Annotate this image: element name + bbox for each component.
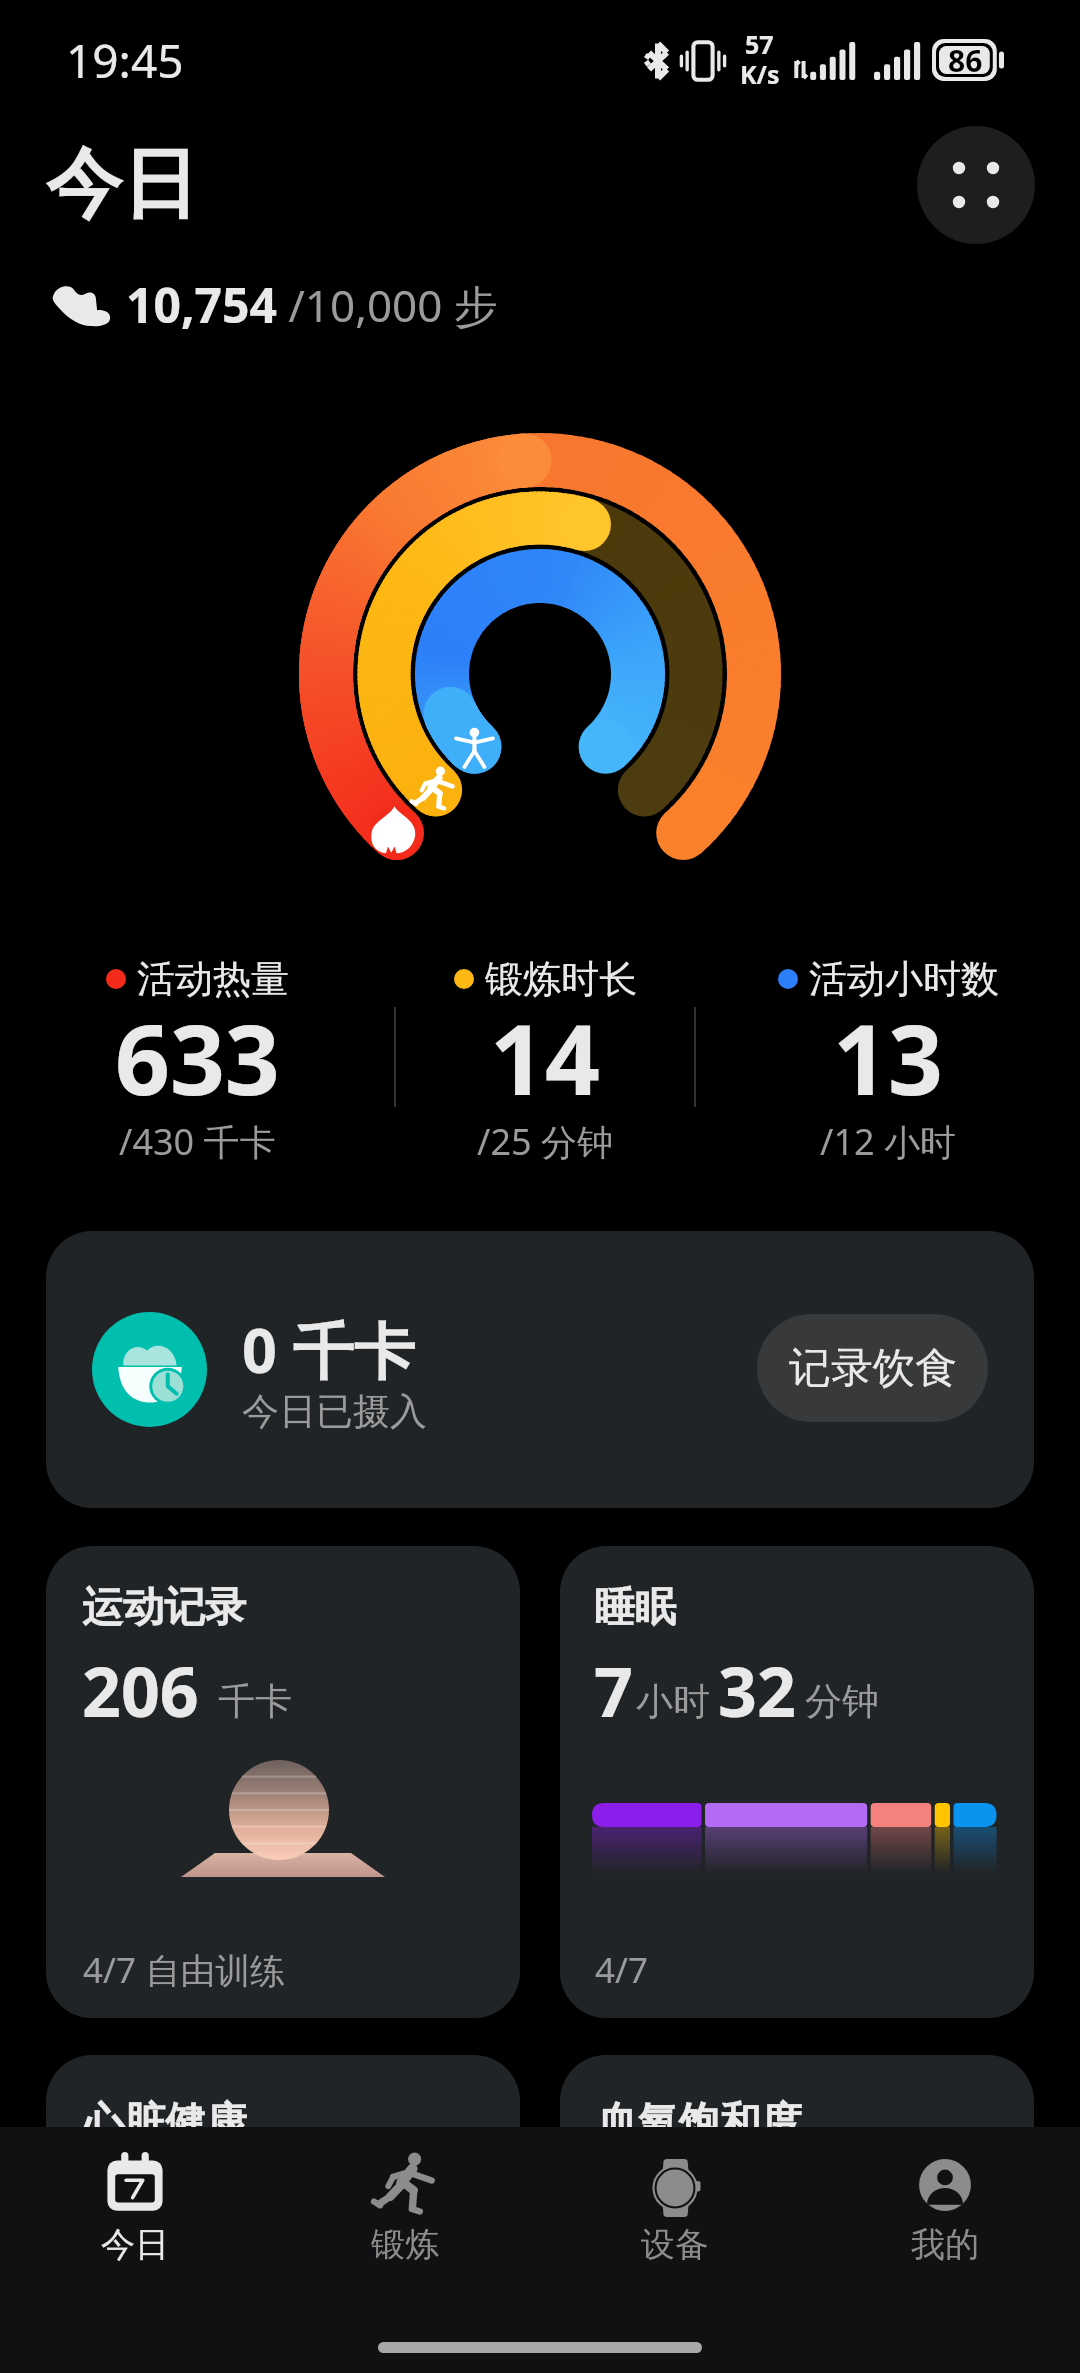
staticText: 14 (490, 992, 600, 1123)
button[interactable]: 今日 (0, 2127, 270, 2327)
staticText: 今日 (46, 137, 198, 233)
staticText: 今日已摄入 (242, 1388, 427, 1435)
staticText: 分钟 (805, 1678, 879, 1725)
staticText: 血氧饱和度 (597, 2097, 802, 2149)
staticText: 记录饮食 (789, 1342, 957, 1395)
button[interactable]: 锻炼 (270, 2127, 540, 2327)
button[interactable]: 血氧饱和度 (560, 2055, 1034, 2355)
staticText: 10,754 (126, 272, 277, 337)
staticText: 活动小时数 (809, 955, 999, 1003)
staticText: 4/7 (595, 1946, 649, 1994)
staticText: 57 (745, 27, 774, 61)
staticText: 86 (948, 40, 983, 81)
staticText: /430 千卡 (119, 1117, 276, 1166)
button[interactable]: 我的 (810, 2127, 1080, 2327)
staticText: 32 (718, 1644, 796, 1737)
staticText: 0 千卡 (242, 1308, 415, 1391)
button[interactable]: 心脏健康 (46, 2055, 520, 2355)
button[interactable]: 睡眠 (560, 1546, 1034, 2018)
staticText: 活动热量 (137, 955, 289, 1003)
staticText: 4/7 自由训练 (83, 1946, 286, 1994)
staticText: 心脏健康 (83, 2097, 247, 2149)
button[interactable]: More options (917, 126, 1035, 244)
button[interactable]: 设备 (540, 2127, 810, 2327)
staticText: 设备 (641, 2223, 709, 2266)
staticText: 我的 (911, 2223, 979, 2266)
staticText: 19:45 (66, 29, 184, 92)
button[interactable]: 锻炼时长 (396, 955, 694, 1170)
staticText: 千卡 (218, 1678, 292, 1725)
button[interactable]: 活动小时数 (696, 955, 1080, 1170)
button[interactable]: 记录饮食 (757, 1314, 988, 1422)
staticText: 睡眠 (594, 1582, 676, 1634)
button[interactable]: 活动热量 (0, 955, 394, 1170)
staticText: 13 (833, 992, 943, 1123)
staticText: 运动记录 (82, 1582, 246, 1634)
staticText: /10,000 步 (277, 275, 498, 335)
staticText: K/s (740, 57, 780, 91)
staticText: 锻炼时长 (485, 955, 637, 1003)
staticText: 7 (594, 1644, 633, 1737)
staticText: /25 分钟 (477, 1117, 613, 1166)
staticText: /12 小时 (820, 1117, 956, 1166)
button[interactable]: 0 千卡 (46, 1231, 1034, 1508)
staticText: 锻炼 (371, 2223, 439, 2266)
staticText: 小时 (636, 1678, 710, 1725)
staticText: 今日 (101, 2223, 169, 2266)
staticText: 633 (115, 992, 280, 1123)
button[interactable]: 运动记录 (46, 1546, 520, 2018)
staticText: 206 (82, 1644, 199, 1737)
